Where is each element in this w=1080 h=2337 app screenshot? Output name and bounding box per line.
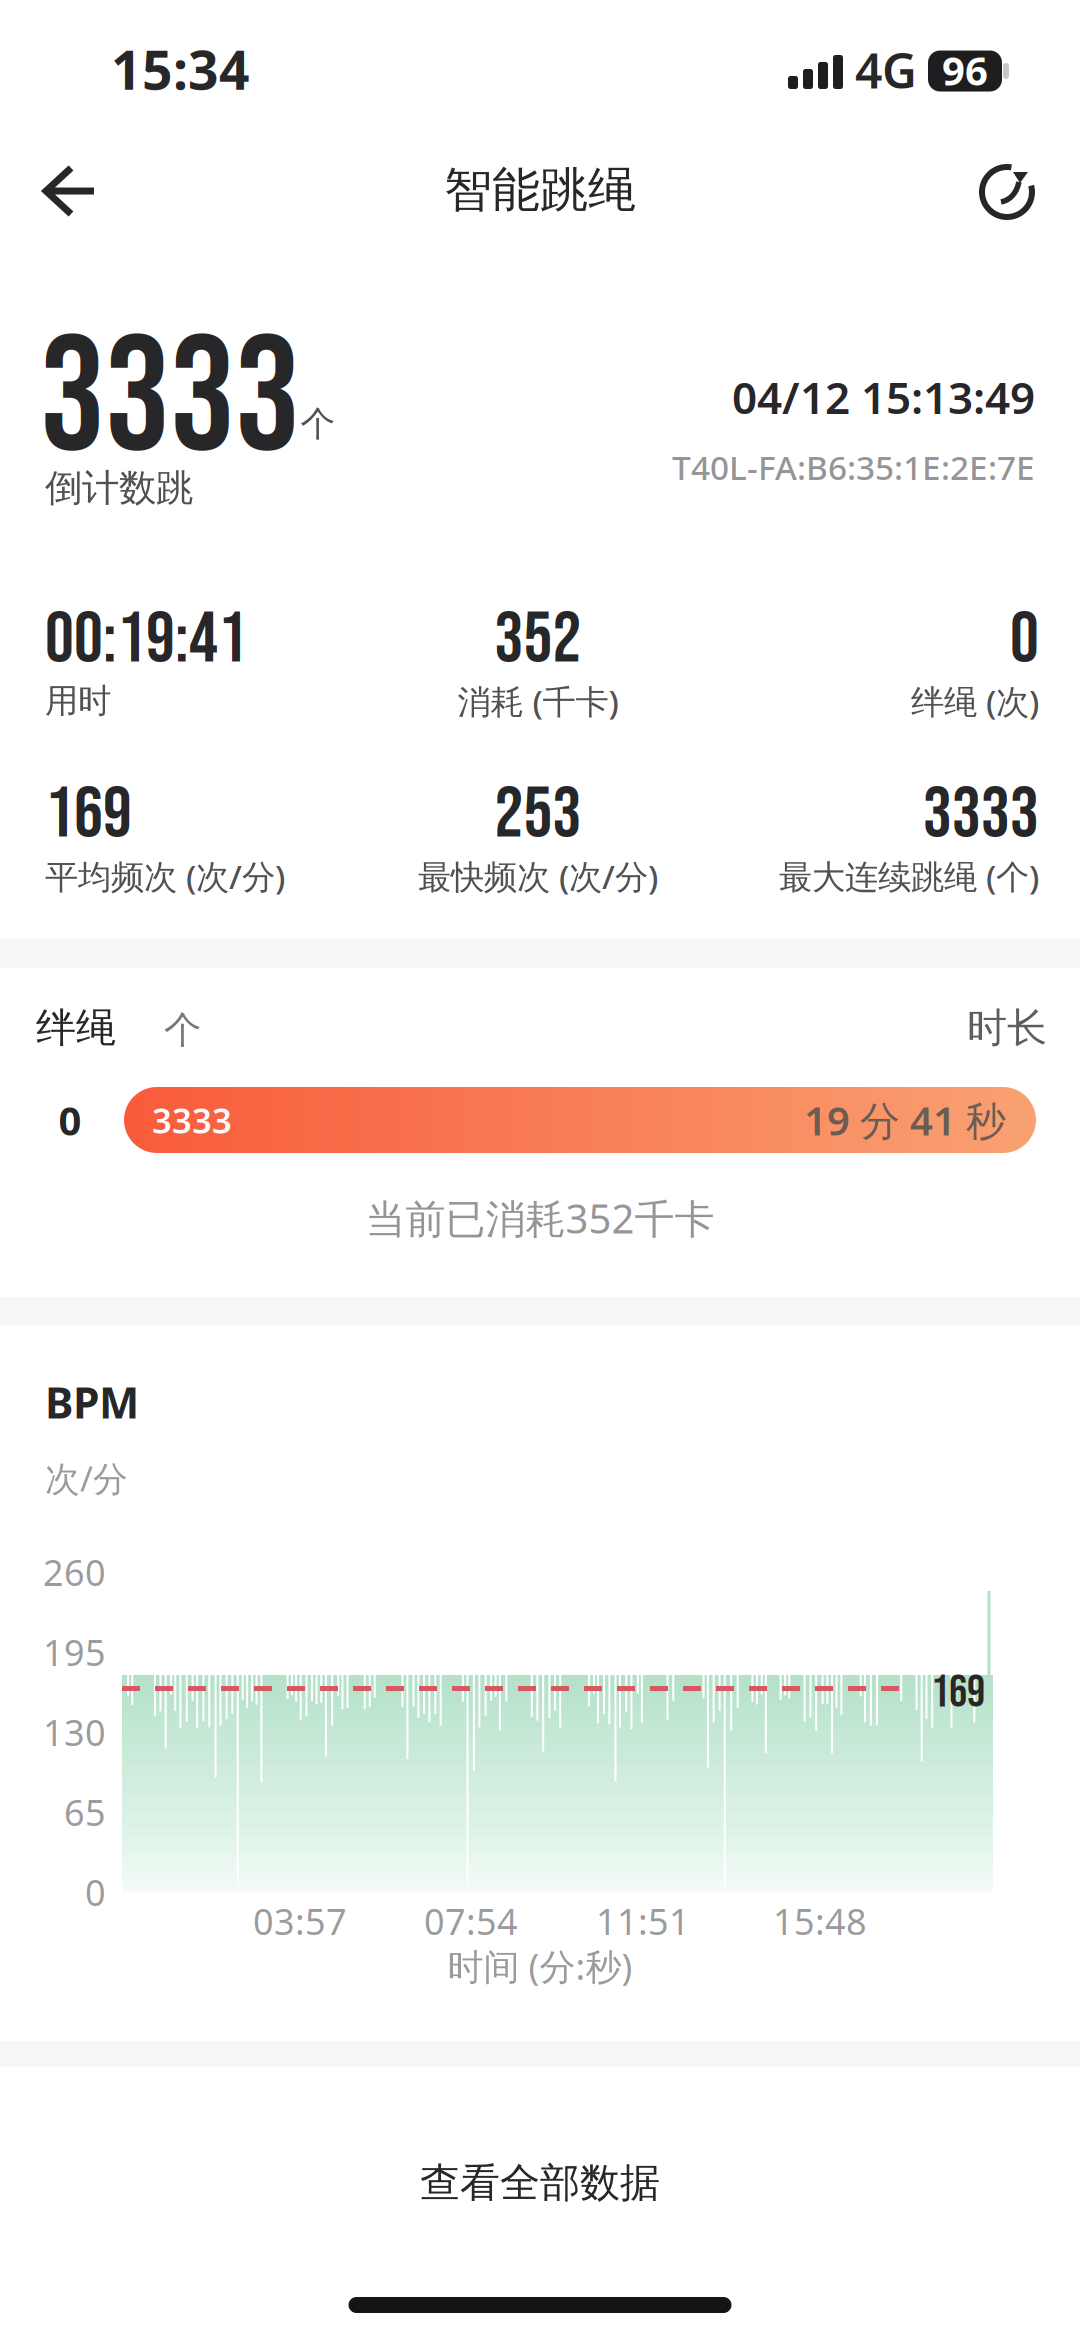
staticText: 4G [855,38,917,102]
staticText: 07:54 [424,1897,518,1945]
staticText: 96 [942,43,988,96]
staticText: 个 [164,1007,201,1053]
staticText: BPM [45,1374,139,1430]
staticText: 时长 [967,1003,1047,1052]
staticText: 次/分 [45,1455,128,1501]
staticText: 195 [43,1628,106,1676]
button[interactable]: 查看全部数据 [340,2138,740,2228]
staticText: 00:19:41 [45,597,247,683]
staticText: 260 [43,1548,106,1596]
staticText: 平均频次 (次/分) [45,854,285,898]
staticText: 消耗 (千卡) [457,679,618,723]
staticText: 253 [494,772,581,858]
staticText: 倒计数跳 [45,465,193,511]
staticText: 绊绳 [36,1003,116,1052]
staticText: 169 [45,772,132,858]
staticText: 最快频次 (次/分) [418,854,658,898]
staticText: 智能跳绳 [444,160,636,219]
staticText: 最大连续跳绳 (个) [779,854,1039,898]
staticText: 11:51 [596,1897,690,1945]
staticText: 15:48 [773,1897,867,1945]
button[interactable]: Back [0,0,1080,2337]
staticText: 用时 [45,680,111,721]
staticText: 查看全部数据 [420,2158,660,2207]
staticText: 3333 [152,1097,232,1143]
staticText: 0 [58,1093,81,1146]
staticText: 15:34 [111,34,250,104]
staticText: 绊绳 (次) [911,679,1039,723]
staticText: 0 [85,1868,106,1916]
staticText: 65 [64,1788,106,1836]
staticText: 19 分 41 秒 [804,1093,1006,1146]
staticText: 3333 [40,302,300,498]
button[interactable]: Refresh [0,0,1080,2337]
staticText: 个 [300,403,335,445]
staticText: 169 [931,1666,985,1720]
staticText: 352 [494,597,581,683]
staticText: 03:57 [253,1897,347,1945]
staticText: 04/12 15:13:49 [732,368,1035,426]
staticText: 时间 (分:秒) [447,1942,632,1990]
staticText: 当前已消耗352千卡 [365,1191,714,1244]
staticText: 130 [43,1708,106,1756]
staticText: 0 [1010,597,1039,683]
staticText: T40L-FA:B6:35:1E:2E:7E [672,445,1035,489]
staticText: 3333 [923,772,1039,858]
